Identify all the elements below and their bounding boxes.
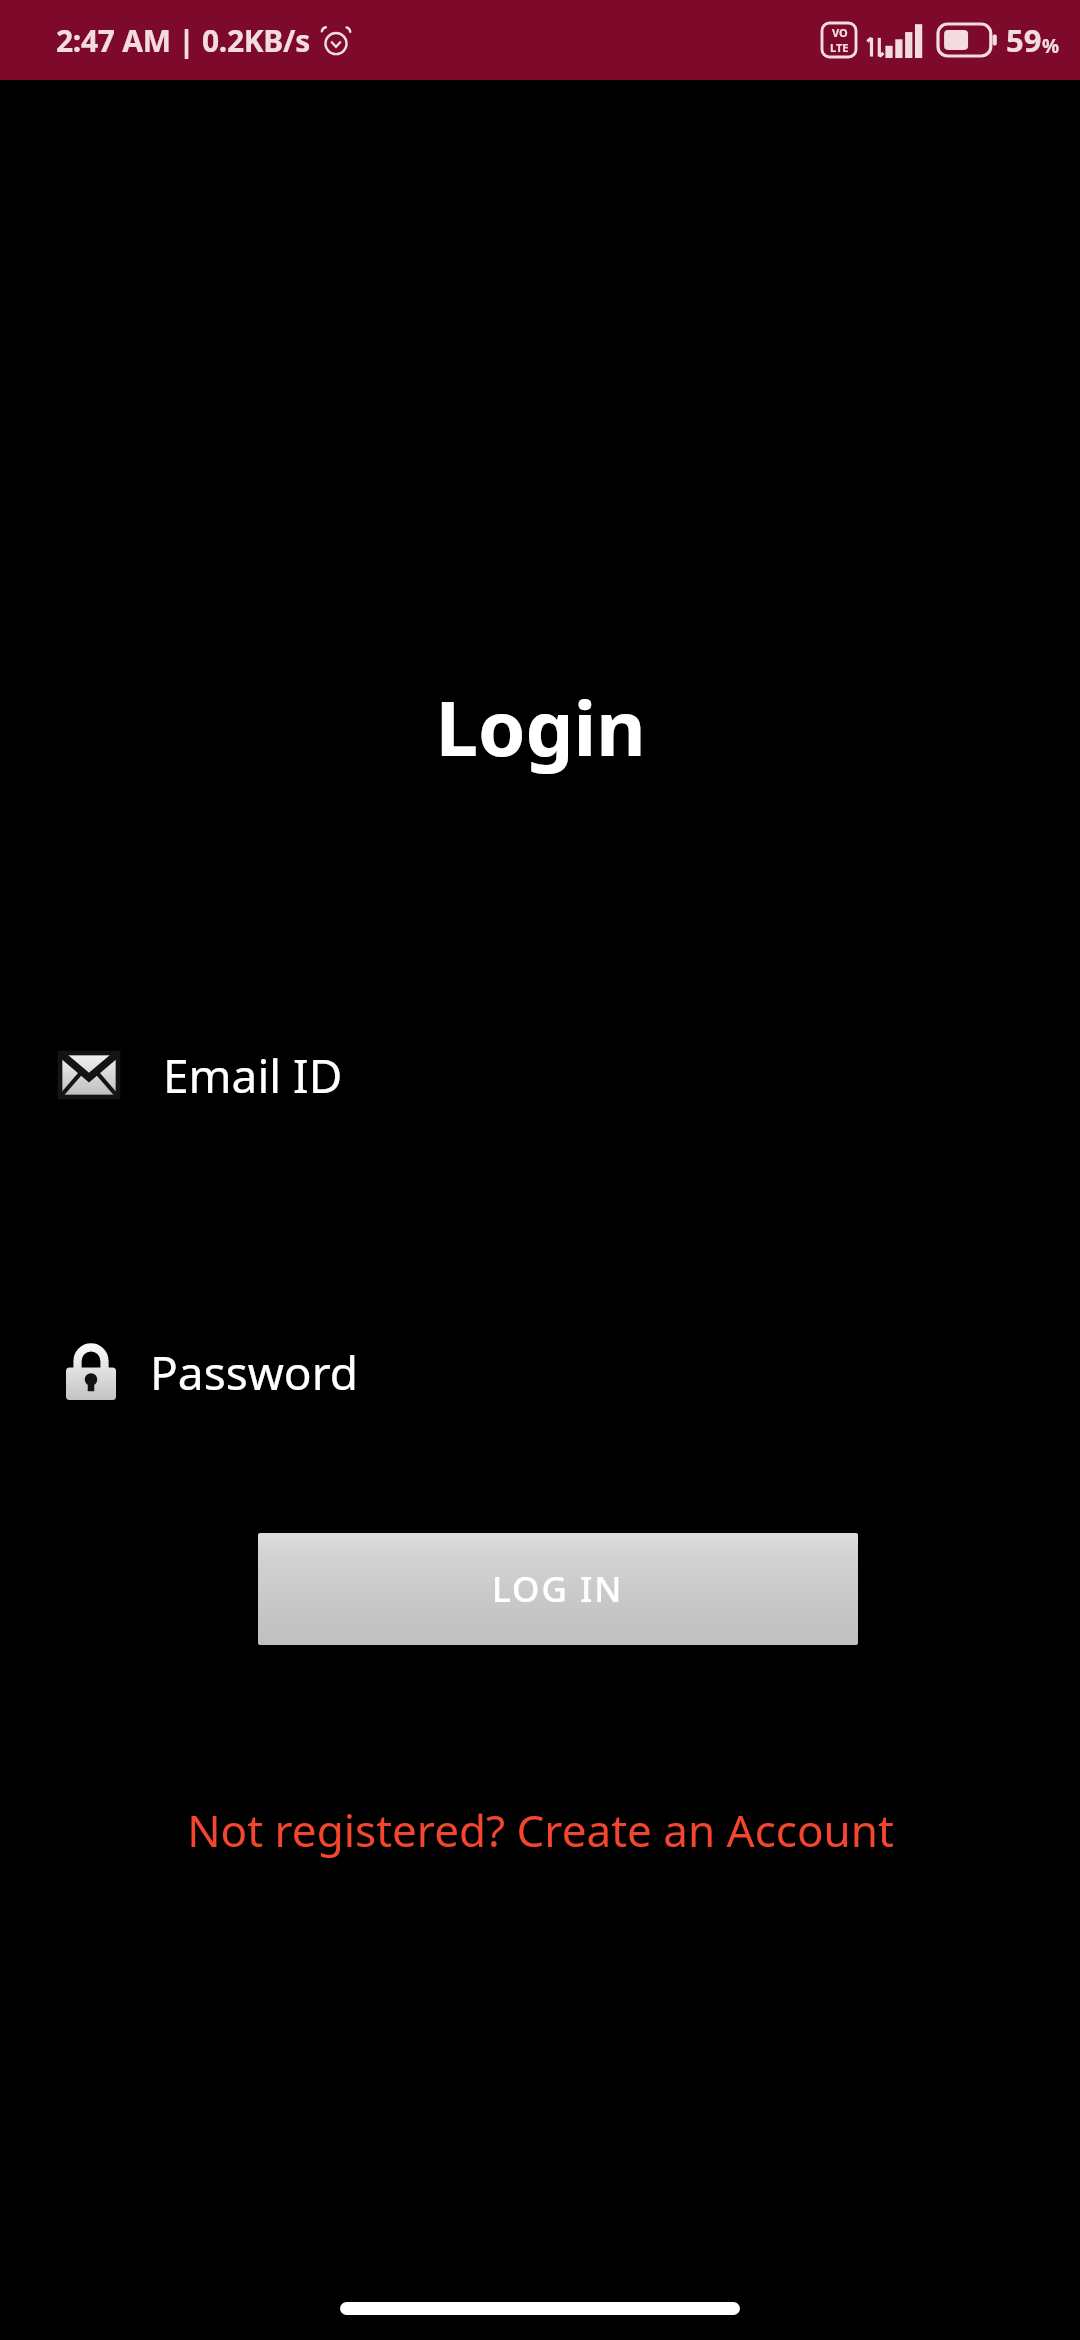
other: Password [66, 1344, 116, 1400]
staticText: Not registered? Create an Account [187, 1800, 894, 1860]
staticText: LTE [830, 40, 849, 55]
button[interactable]: Not registered? Create an Account [173, 1792, 908, 1868]
button[interactable]: LOG IN [258, 1533, 858, 1645]
staticText: VO [832, 25, 848, 40]
staticText: LOG IN [492, 1565, 624, 1613]
button[interactable]: Email [0, 1020, 1080, 1130]
staticText: Login [435, 675, 646, 779]
staticText: 2:47 AM | 0.2KB/s [56, 20, 310, 61]
button[interactable]: Password [0, 1317, 1080, 1427]
staticText: Email ID [163, 1044, 343, 1107]
staticText: % [1042, 33, 1060, 59]
staticText: Password [150, 1341, 359, 1404]
other: Email [60, 1053, 118, 1097]
staticText: 59 [1006, 19, 1042, 61]
